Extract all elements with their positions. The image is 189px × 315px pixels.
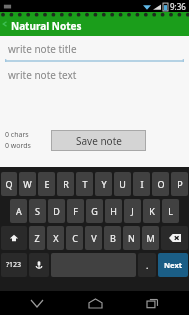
button[interactable]: write note title — [5, 40, 184, 62]
staticText: W — [23, 178, 32, 190]
button[interactable]: Next — [158, 253, 188, 277]
staticText: C — [72, 232, 78, 244]
staticText: Y — [101, 178, 107, 190]
staticText: Save note — [76, 134, 122, 148]
button[interactable]: . — [138, 253, 156, 277]
staticText: G — [91, 205, 98, 217]
button[interactable]: Home — [75, 291, 115, 315]
button[interactable]: W — [19, 172, 36, 196]
button[interactable]: M — [142, 226, 159, 250]
button[interactable]: N — [123, 226, 140, 250]
staticText: Natural Notes — [11, 19, 82, 33]
staticText: P — [177, 178, 183, 190]
button[interactable]: R — [57, 172, 74, 196]
button[interactable]: J — [124, 199, 141, 223]
staticText: U — [119, 178, 126, 190]
staticText: H — [110, 205, 117, 217]
staticText: N — [128, 232, 135, 244]
staticText: write note title — [8, 42, 77, 56]
button[interactable]: Save note — [51, 130, 146, 151]
button[interactable]: G — [86, 199, 103, 223]
staticText: 9:36 — [170, 1, 186, 12]
staticText: X — [53, 232, 59, 244]
button[interactable]: K — [143, 199, 160, 223]
button[interactable]: T — [76, 172, 93, 196]
button[interactable]: I — [133, 172, 150, 196]
staticText: O — [157, 178, 165, 190]
button[interactable]: Y — [95, 172, 112, 196]
button[interactable]: D — [48, 199, 65, 223]
staticText: E — [44, 178, 50, 190]
staticText: B — [110, 232, 116, 244]
button[interactable]: P — [171, 172, 188, 196]
staticText: Next — [164, 260, 183, 270]
staticText: 0 words — [5, 141, 31, 151]
button[interactable]: Shift — [1, 226, 27, 250]
button[interactable]: H — [105, 199, 122, 223]
staticText: M — [146, 232, 155, 244]
staticText: Z — [34, 232, 40, 244]
staticText: Q — [5, 178, 13, 190]
staticText: write note text — [8, 68, 77, 82]
staticText: D — [53, 205, 60, 217]
button[interactable]: F — [67, 199, 84, 223]
button[interactable]: Z — [29, 226, 45, 250]
button[interactable]: Navigate up — [0, 12, 9, 36]
button[interactable]: Q — [1, 172, 17, 196]
button[interactable]: Recent apps — [132, 291, 172, 315]
staticText: R — [63, 178, 69, 190]
button[interactable]: C — [66, 226, 83, 250]
staticText: K — [149, 205, 155, 217]
staticText: . — [146, 259, 149, 271]
staticText: L — [168, 205, 173, 217]
button[interactable]: B — [104, 226, 121, 250]
staticText: T — [82, 178, 88, 190]
button[interactable]: Voice input — [29, 253, 49, 277]
button[interactable]: U — [114, 172, 131, 196]
button[interactable]: S — [29, 199, 46, 223]
button[interactable]: O — [152, 172, 169, 196]
staticText: F — [73, 205, 78, 217]
button[interactable]: Backspace — [161, 226, 188, 250]
staticText: V — [91, 232, 97, 244]
button[interactable]: ?123 — [1, 253, 27, 277]
staticText: 0 chars — [5, 130, 29, 140]
button[interactable]: X — [47, 226, 64, 250]
button[interactable]: Hide keyboard — [17, 291, 57, 315]
button[interactable]: V — [85, 226, 102, 250]
staticText: A — [16, 205, 22, 217]
staticText: ?123 — [6, 260, 22, 270]
staticText: J — [131, 205, 134, 217]
staticText: I — [140, 178, 144, 190]
staticText: S — [35, 205, 40, 217]
button[interactable]: write note text — [5, 67, 184, 122]
button[interactable]: L — [162, 199, 179, 223]
button[interactable]: A — [10, 199, 27, 223]
button[interactable]: E — [38, 172, 55, 196]
